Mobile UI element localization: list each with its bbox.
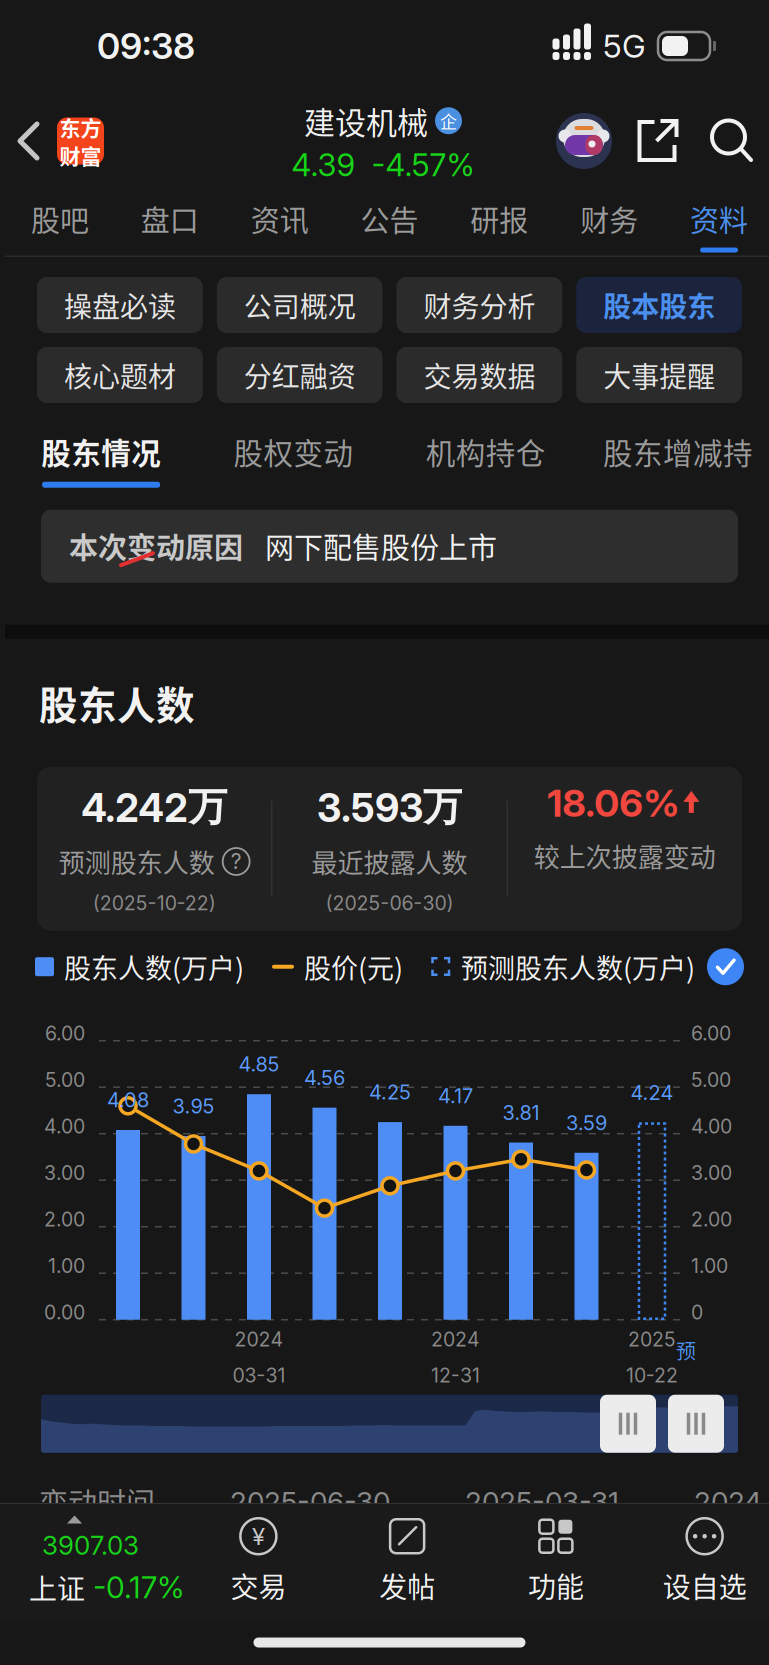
staticText: 0.00 xyxy=(44,1301,85,1324)
staticText: 财务 xyxy=(580,198,638,240)
staticText: 股东情况 xyxy=(41,430,161,473)
staticText: 财富 xyxy=(59,140,101,170)
staticText: 2025-03-31 xyxy=(465,1485,619,1519)
staticText: 3.00 xyxy=(691,1161,732,1185)
staticText: 预 xyxy=(676,1336,696,1365)
staticText: 大事提醒 xyxy=(603,355,715,395)
staticText: 6.00 xyxy=(45,1022,85,1045)
staticText: 5G xyxy=(603,27,646,65)
staticText: 变动时间 xyxy=(39,1481,155,1523)
staticText: 4.56 xyxy=(304,1066,345,1090)
button[interactable]: 公告 xyxy=(335,190,444,256)
staticText: 1.00 xyxy=(691,1254,728,1278)
staticText: 3907.03 xyxy=(42,1529,139,1561)
staticText: 股东人数 xyxy=(39,675,195,730)
staticText: 4.17 xyxy=(438,1084,473,1108)
staticText: 盘口 xyxy=(141,198,199,240)
button[interactable]: 发帖 xyxy=(333,1511,482,1611)
staticText: 预测股东人数(万户) xyxy=(461,947,695,986)
staticText: 2025 xyxy=(628,1328,676,1351)
staticText: 0 xyxy=(691,1301,703,1324)
staticText: 股东增减持 xyxy=(603,430,753,473)
button[interactable]: Back xyxy=(5,115,57,167)
staticText: 3.81 xyxy=(502,1101,539,1125)
button[interactable]: 公司概况 xyxy=(217,277,383,333)
button[interactable]: Share xyxy=(621,104,695,178)
staticText: 设自选 xyxy=(663,1565,747,1606)
staticText: 3.593万 xyxy=(317,782,462,832)
staticText: 股本股东 xyxy=(603,285,715,325)
button[interactable]: 股东增减持 xyxy=(582,430,769,488)
button[interactable]: East Money xyxy=(57,117,104,164)
button[interactable]: 功能 xyxy=(481,1511,630,1611)
staticText: 3.95 xyxy=(172,1094,214,1118)
staticText: 3.59 xyxy=(566,1111,607,1135)
button[interactable]: 交易数据 xyxy=(396,347,562,403)
staticText: 4.00 xyxy=(691,1115,732,1138)
button[interactable]: 操盘必读 xyxy=(37,277,203,333)
staticText: 东方 xyxy=(59,112,101,142)
staticText: 4.85 xyxy=(238,1052,279,1076)
staticText: 2025-06-30 xyxy=(230,1485,390,1519)
staticText: 股价(元) xyxy=(304,947,403,986)
staticText: 功能 xyxy=(528,1565,584,1606)
button[interactable]: Search xyxy=(695,104,769,178)
staticText: 5.00 xyxy=(691,1068,731,1092)
staticText: 操盘必读 xyxy=(64,285,176,325)
staticText: 股吧 xyxy=(31,198,89,240)
staticText: 2.00 xyxy=(691,1208,732,1231)
staticText: ¥ xyxy=(252,1522,265,1551)
button[interactable]: ¥ xyxy=(184,1511,333,1611)
staticText: 较上次披露变动 xyxy=(534,837,716,874)
staticText: 财务分析 xyxy=(423,285,535,325)
staticText: 本次变动原因 xyxy=(69,525,243,567)
staticText: ? xyxy=(231,849,242,874)
staticText: 网下配售股份上市 xyxy=(265,525,497,567)
staticText: (2025-06-30) xyxy=(325,891,453,915)
staticText: 5.00 xyxy=(45,1068,85,1092)
staticText: -4.57% xyxy=(371,146,474,184)
staticText: 公告 xyxy=(360,198,418,240)
staticText: 交易 xyxy=(230,1565,286,1606)
button[interactable]: 大事提醒 xyxy=(576,347,742,403)
button[interactable]: 财务 xyxy=(554,190,664,256)
staticText: 18.06% xyxy=(547,780,679,826)
button[interactable]: 财务分析 xyxy=(396,277,562,333)
button[interactable]: 资料 xyxy=(664,190,769,256)
button[interactable]: 股本股东 xyxy=(576,277,742,333)
button[interactable]: Assistant xyxy=(547,104,621,178)
staticText: -0.17% xyxy=(93,1569,184,1605)
button[interactable]: 盘口 xyxy=(115,190,225,256)
staticText: 2024 xyxy=(234,1328,283,1351)
staticText: 4.242万 xyxy=(81,782,227,832)
staticText: 股权变动 xyxy=(233,430,353,473)
staticText: 09:38 xyxy=(97,24,195,68)
staticText: 机构持仓 xyxy=(426,430,546,473)
staticText: 4.00 xyxy=(44,1115,85,1138)
button[interactable]: 股东情况 xyxy=(5,430,197,488)
button[interactable]: 机构持仓 xyxy=(389,430,582,488)
staticText: 4.39 xyxy=(291,146,355,184)
button[interactable]: 分红融资 xyxy=(217,347,383,403)
button[interactable]: 股吧 xyxy=(5,190,115,256)
staticText: 10-22 xyxy=(626,1364,678,1387)
button[interactable]: 股权变动 xyxy=(197,430,389,488)
staticText: 企 xyxy=(440,108,457,133)
staticText: 4.08 xyxy=(107,1088,149,1112)
staticText: 4.24 xyxy=(630,1081,673,1105)
button[interactable]: 核心题材 xyxy=(37,347,203,403)
staticText: 4.25 xyxy=(369,1080,411,1104)
staticText: 核心题材 xyxy=(64,355,176,395)
staticText: 3.00 xyxy=(44,1161,85,1185)
staticText: 预测股东人数 xyxy=(59,843,215,880)
staticText: 03-31 xyxy=(232,1364,285,1387)
button[interactable]: 资讯 xyxy=(225,190,335,256)
staticText: 上证 xyxy=(29,1567,85,1607)
staticText: 公司概况 xyxy=(244,285,356,325)
staticText: 2024 xyxy=(431,1328,480,1351)
button[interactable]: 设自选 xyxy=(630,1511,769,1611)
staticText: 资料 xyxy=(690,198,748,240)
staticText: 分红融资 xyxy=(244,355,356,395)
button[interactable]: 研报 xyxy=(444,190,554,256)
staticText: 建设机械 xyxy=(304,98,428,143)
